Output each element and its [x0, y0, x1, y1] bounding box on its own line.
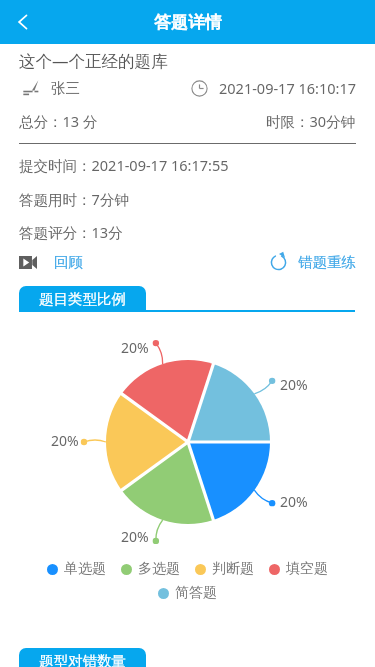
staticText: 提交时间：2021-09-17 16:17:55: [19, 155, 229, 175]
staticText: 20%: [280, 375, 308, 394]
staticText: 这个—个正经的题库: [19, 49, 168, 72]
button[interactable]: 填空题: [269, 560, 328, 578]
staticText: 判断题: [212, 560, 254, 578]
button[interactable]: 单选题: [47, 560, 106, 578]
staticText: 答题评分：13分: [19, 222, 123, 242]
staticText: 回顾: [54, 253, 83, 271]
button[interactable]: 回顾: [19, 253, 83, 271]
staticText: 题型对错数量: [39, 652, 126, 667]
button[interactable]: 判断题: [195, 560, 254, 578]
button[interactable]: 简答题: [158, 584, 217, 602]
staticText: 20%: [121, 527, 149, 546]
staticText: 错题重练: [298, 253, 356, 271]
button[interactable]: Back: [0, 0, 46, 44]
staticText: 时限：30分钟: [266, 111, 356, 131]
staticText: 2021-09-17 16:10:17: [219, 78, 356, 98]
staticText: 填空题: [286, 560, 328, 578]
staticText: 总分：13 分: [19, 111, 98, 131]
staticText: 20%: [51, 431, 79, 450]
staticText: 答题详情: [154, 12, 222, 33]
button[interactable]: 题型对错数量: [19, 648, 146, 667]
button[interactable]: 题目类型比例: [19, 286, 146, 312]
staticText: 20%: [121, 338, 149, 357]
staticText: 多选题: [138, 560, 180, 578]
staticText: 答题用时：7分钟: [19, 189, 129, 209]
staticText: 20%: [280, 492, 308, 511]
button[interactable]: 错题重练: [270, 253, 356, 271]
staticText: 单选题: [64, 560, 106, 578]
staticText: 题目类型比例: [39, 290, 126, 308]
staticText: 简答题: [175, 584, 217, 602]
staticText: 张三: [51, 79, 80, 97]
button[interactable]: 多选题: [121, 560, 180, 578]
